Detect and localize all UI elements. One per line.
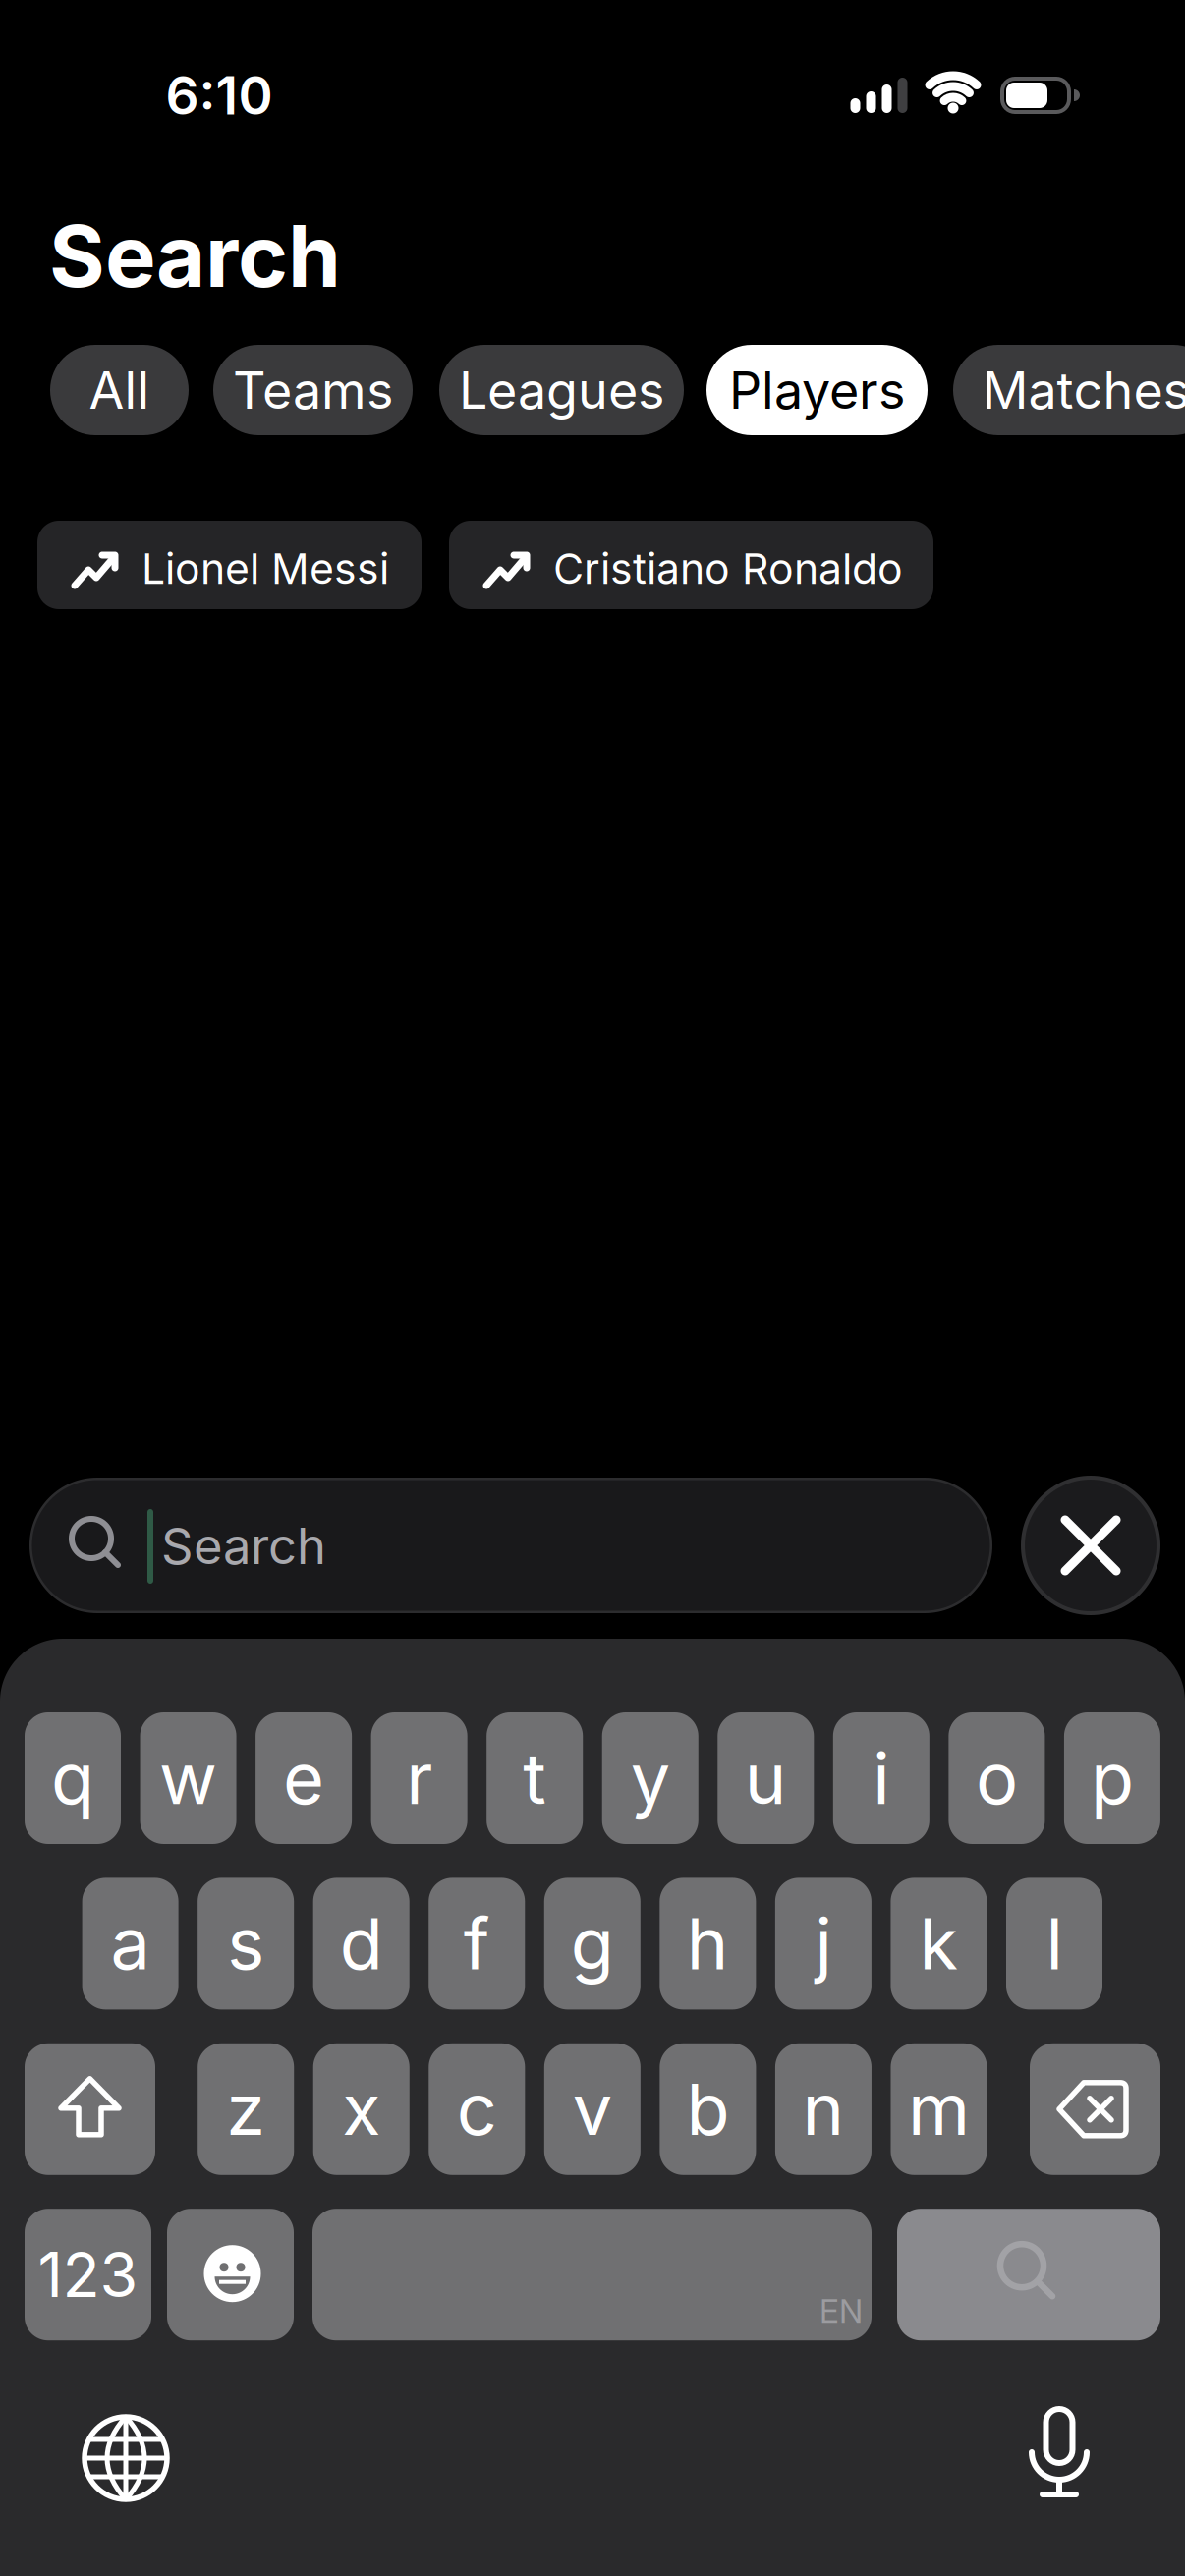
staticText: w (159, 1735, 217, 1821)
staticText: z (226, 2066, 265, 2152)
button[interactable]: w (140, 1712, 236, 1844)
button[interactable]: Cristiano Ronaldo (449, 521, 933, 609)
button[interactable]: j (775, 1878, 871, 2010)
button[interactable]: Search (29, 1478, 992, 1613)
button[interactable]: u (718, 1712, 814, 1844)
button[interactable]: x (313, 2043, 410, 2175)
staticText: All (89, 359, 150, 421)
button[interactable]: o (949, 1712, 1045, 1844)
button[interactable] (25, 2043, 155, 2175)
button[interactable]: k (891, 1878, 987, 2010)
staticText: v (573, 2066, 612, 2152)
staticText: e (283, 1735, 324, 1821)
staticText: 123 (38, 2237, 138, 2312)
button[interactable]: Players (706, 345, 928, 435)
staticText: p (1091, 1735, 1134, 1821)
staticText: Matches (982, 359, 1185, 421)
button[interactable]: e (256, 1712, 352, 1844)
staticText: c (457, 2066, 497, 2152)
button[interactable]: Teams (213, 345, 413, 435)
staticText: m (908, 2066, 970, 2152)
staticText: t (523, 1735, 547, 1821)
staticText: y (631, 1735, 670, 1821)
staticText: j (815, 1901, 832, 1986)
button[interactable]: Matches (953, 345, 1185, 435)
staticText: 6:10 (166, 64, 273, 127)
staticText: Cristiano Ronaldo (553, 543, 903, 594)
button[interactable]: Lionel Messi (37, 521, 422, 609)
button[interactable]: a (82, 1878, 178, 2010)
staticText: EN (819, 2291, 863, 2331)
staticText: k (919, 1901, 959, 1986)
staticText: b (686, 2066, 729, 2152)
staticText: i (873, 1735, 890, 1821)
button[interactable] (897, 2209, 1160, 2340)
button[interactable]: EN (312, 2209, 872, 2340)
button[interactable]: Leagues (439, 345, 684, 435)
button[interactable]: r (371, 1712, 467, 1844)
staticText: Players (729, 359, 905, 421)
staticText: l (1046, 1901, 1063, 1986)
button[interactable] (1005, 2398, 1113, 2506)
staticText: Search (49, 204, 341, 307)
staticText: h (687, 1901, 729, 1986)
button[interactable] (167, 2209, 294, 2340)
button[interactable]: h (660, 1878, 756, 2010)
button[interactable]: b (660, 2043, 756, 2175)
button[interactable]: c (429, 2043, 525, 2175)
button[interactable]: q (25, 1712, 121, 1844)
button[interactable]: v (544, 2043, 640, 2175)
staticText: g (571, 1901, 614, 1986)
button[interactable] (1021, 1476, 1160, 1615)
staticText: n (802, 2066, 845, 2152)
button[interactable]: t (487, 1712, 583, 1844)
staticText: u (745, 1735, 787, 1821)
button[interactable]: m (891, 2043, 987, 2175)
staticText: s (227, 1901, 264, 1986)
staticText: x (342, 2066, 380, 2152)
button[interactable]: All (50, 345, 189, 435)
staticText: Lionel Messi (141, 543, 389, 594)
button[interactable]: f (429, 1878, 525, 2010)
staticText: d (340, 1901, 383, 1986)
button[interactable]: 123 (25, 2209, 151, 2340)
button[interactable]: l (1006, 1878, 1102, 2010)
button[interactable] (67, 2399, 185, 2517)
button[interactable]: i (833, 1712, 929, 1844)
button[interactable]: z (198, 2043, 294, 2175)
staticText: r (406, 1735, 432, 1821)
button[interactable]: d (313, 1878, 409, 2010)
button[interactable]: y (602, 1712, 698, 1844)
button[interactable]: p (1064, 1712, 1160, 1844)
button[interactable]: s (198, 1878, 294, 2010)
staticText: Search (161, 1516, 326, 1576)
button[interactable] (1030, 2043, 1160, 2175)
staticText: Teams (233, 359, 393, 421)
button[interactable]: g (544, 1878, 640, 2010)
staticText: q (51, 1735, 94, 1821)
button[interactable]: n (775, 2043, 872, 2175)
staticText: o (976, 1735, 1018, 1821)
staticText: f (464, 1901, 490, 1986)
staticText: a (111, 1901, 150, 1986)
staticText: Leagues (459, 359, 664, 421)
